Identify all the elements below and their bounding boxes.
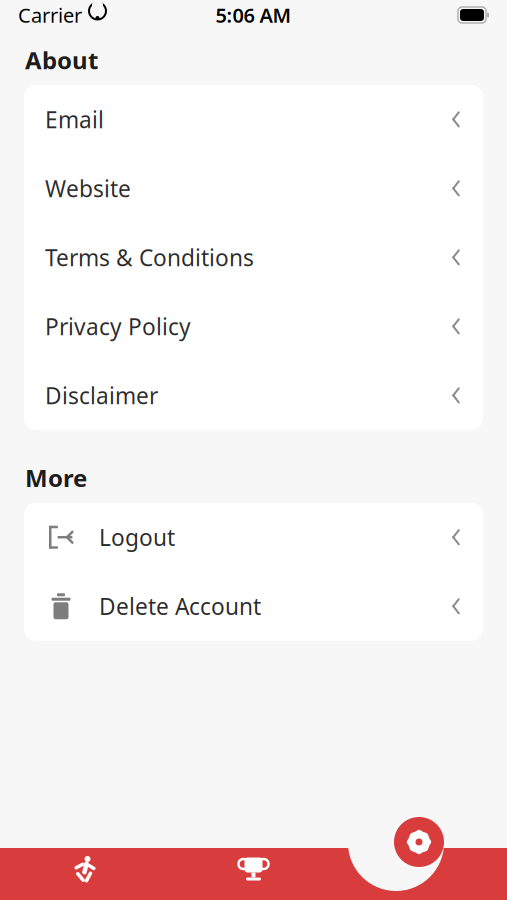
button[interactable]: Settings — [394, 817, 444, 867]
button[interactable]: Activity — [0, 838, 169, 900]
button[interactable]: Website — [24, 154, 483, 223]
staticText: More — [25, 462, 87, 494]
staticText: Disclaimer — [45, 380, 158, 410]
staticText: Delete Account — [99, 591, 261, 621]
staticText: Email — [45, 104, 104, 134]
button[interactable]: Achievements — [169, 838, 338, 900]
staticText: Website — [45, 173, 131, 203]
staticText: 5:06 AM — [215, 2, 291, 28]
staticText: Carrier — [18, 2, 82, 28]
staticText: Privacy Policy — [45, 311, 191, 341]
button[interactable]: Terms & Conditions — [24, 223, 483, 292]
button[interactable]: Disclaimer — [24, 361, 483, 430]
staticText: Logout — [99, 522, 175, 552]
staticText: Terms & Conditions — [45, 242, 254, 272]
button[interactable]: Email — [24, 85, 483, 154]
button[interactable]: Delete Account — [24, 572, 483, 641]
staticText: About — [25, 44, 98, 76]
button[interactable]: Privacy Policy — [24, 292, 483, 361]
button[interactable]: Logout — [24, 503, 483, 572]
